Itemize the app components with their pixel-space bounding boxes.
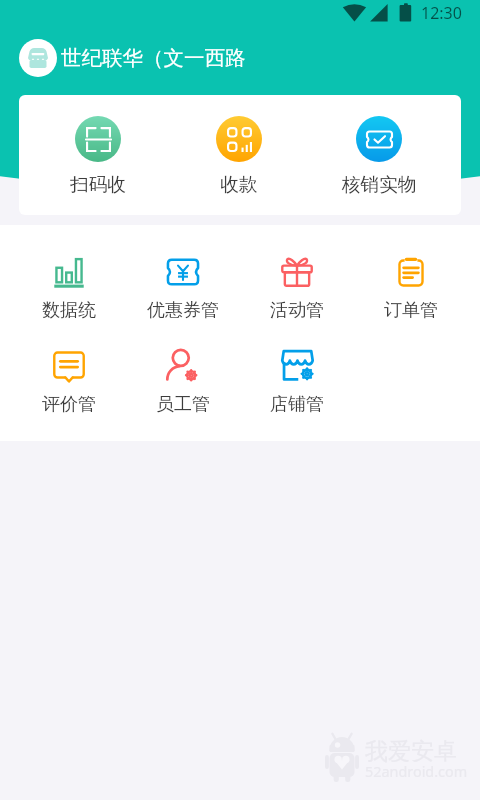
- button[interactable]: 扫码收: [40, 95, 156, 197]
- staticText: 评价管: [42, 393, 96, 413]
- button[interactable]: 评价管: [12, 319, 126, 413]
- staticText: 店铺管: [270, 393, 324, 413]
- button[interactable]: 员工管: [126, 319, 240, 413]
- staticText: 活动管: [270, 299, 324, 319]
- button[interactable]: 数据统: [12, 225, 126, 319]
- staticText: 数据统: [42, 299, 96, 319]
- staticText: 订单管: [384, 299, 438, 319]
- staticText: 核销实物: [321, 173, 437, 197]
- button[interactable]: 订单管: [354, 225, 468, 319]
- button[interactable]: 收款: [181, 95, 297, 197]
- staticText: 优惠券管: [147, 299, 219, 319]
- staticText: 员工管: [156, 393, 210, 413]
- staticText: 52android.com: [365, 762, 468, 782]
- staticText: 扫码收: [40, 173, 156, 197]
- button[interactable]: 核销实物: [321, 95, 437, 197]
- staticText: 12:30: [421, 2, 462, 24]
- button[interactable]: 优惠券管: [126, 225, 240, 319]
- button[interactable]: 店铺管: [240, 319, 354, 413]
- staticText: 世纪联华（文一西路: [61, 45, 246, 71]
- staticText: 收款: [181, 173, 297, 197]
- button[interactable]: 活动管: [240, 225, 354, 319]
- staticText: 我爱安卓: [365, 737, 457, 766]
